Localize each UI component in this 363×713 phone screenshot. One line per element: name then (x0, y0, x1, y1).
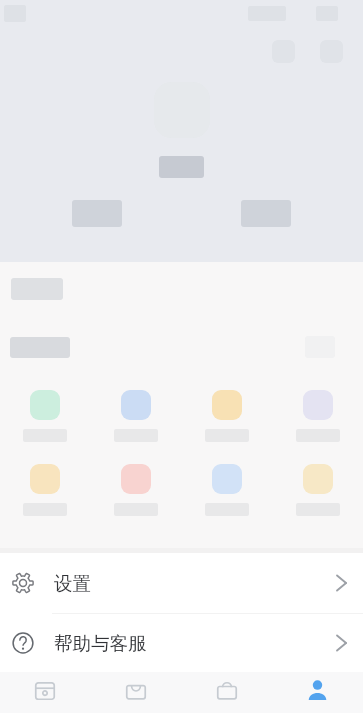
button[interactable]: Profile (272, 672, 363, 713)
button[interactable] (90, 390, 181, 442)
button[interactable] (272, 390, 363, 442)
button[interactable]: Categories (90, 672, 181, 713)
staticText: 设置 (54, 572, 91, 595)
button[interactable] (0, 464, 90, 516)
button[interactable] (90, 464, 181, 516)
button[interactable] (181, 464, 272, 516)
button[interactable]: 帮助与客服 (0, 614, 363, 672)
button[interactable] (272, 464, 363, 516)
button[interactable]: 设置 (0, 553, 363, 613)
button[interactable]: Cart (181, 672, 272, 713)
button[interactable] (181, 390, 272, 442)
staticText: 帮助与客服 (54, 632, 147, 655)
button[interactable]: Home (0, 672, 90, 713)
button[interactable] (0, 390, 90, 442)
